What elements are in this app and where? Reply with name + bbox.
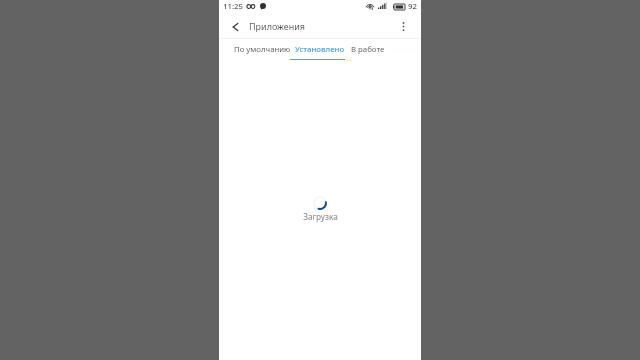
button[interactable]: More options xyxy=(385,15,421,38)
button[interactable]: Back xyxy=(219,15,251,38)
staticText: 92 xyxy=(408,1,417,12)
staticText: Установлено xyxy=(295,44,345,55)
button[interactable]: Установлено xyxy=(293,39,347,60)
button[interactable]: По умолчанию xyxy=(232,39,293,60)
button[interactable]: В работе xyxy=(347,39,387,60)
staticText: Загрузка xyxy=(303,211,338,222)
staticText: Приложения xyxy=(249,20,306,32)
staticText: В работе xyxy=(351,44,385,55)
staticText: По умолчанию xyxy=(234,44,291,55)
staticText: 11:25 xyxy=(223,1,243,12)
